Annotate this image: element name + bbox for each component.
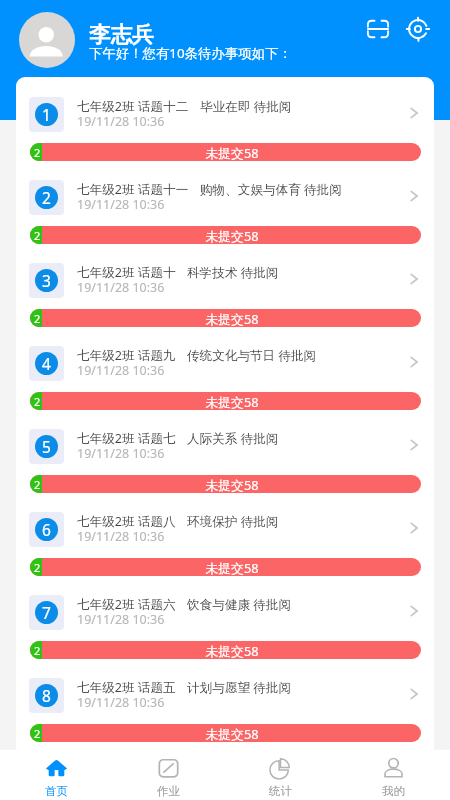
staticText: 七年级2班 话题十 <box>77 264 176 281</box>
staticText: 七年级2班 话题十二 <box>77 98 189 115</box>
button[interactable]: 首页 <box>0 750 112 800</box>
button[interactable]: 5 <box>16 409 434 492</box>
button[interactable]: 8 <box>16 658 434 741</box>
staticText: 未提交58 <box>205 725 259 742</box>
staticText: 19/11/28 10:36 <box>77 528 165 545</box>
staticText: 统计 <box>269 784 292 798</box>
staticText: 19/11/28 10:36 <box>77 196 165 213</box>
staticText: 1 <box>42 104 51 125</box>
button[interactable]: 作业 <box>112 750 224 800</box>
staticText: 2 <box>34 560 41 575</box>
button[interactable]: 2 <box>16 160 434 243</box>
staticText: 环境保护 待批阅 <box>187 513 279 530</box>
staticText: 饮食与健康 待批阅 <box>187 596 292 613</box>
staticText: 4 <box>42 353 51 374</box>
staticText: 未提交58 <box>205 393 259 410</box>
staticText: 19/11/28 10:36 <box>77 113 165 130</box>
staticText: 2 <box>34 145 41 160</box>
staticText: 李志兵 <box>89 21 154 48</box>
staticText: 2 <box>34 311 41 326</box>
button[interactable]: 7 <box>16 575 434 658</box>
staticText: 未提交58 <box>205 144 259 161</box>
staticText: 19/11/28 10:36 <box>77 362 165 379</box>
staticText: 2 <box>34 726 41 741</box>
staticText: 2 <box>34 228 41 243</box>
staticText: 6 <box>42 519 51 540</box>
staticText: 未提交58 <box>205 310 259 327</box>
staticText: 7 <box>42 602 51 623</box>
button[interactable]: 4 <box>16 326 434 409</box>
staticText: 七年级2班 话题九 <box>77 347 176 364</box>
button[interactable]: 1 <box>16 77 434 160</box>
button[interactable]: Locate <box>400 11 436 47</box>
staticText: 未提交58 <box>205 476 259 493</box>
staticText: 首页 <box>45 784 68 798</box>
staticText: 购物、文娱与体育 待批阅 <box>200 181 342 198</box>
staticText: 19/11/28 10:36 <box>77 279 165 296</box>
staticText: 2 <box>42 187 51 208</box>
staticText: 未提交58 <box>205 227 259 244</box>
staticText: 我的 <box>382 784 405 798</box>
staticText: 2 <box>34 394 41 409</box>
staticText: 2 <box>34 477 41 492</box>
staticText: 毕业在即 待批阅 <box>200 98 292 115</box>
staticText: 人际关系 待批阅 <box>187 430 279 447</box>
button[interactable]: Profile avatar <box>19 12 75 68</box>
button[interactable]: 统计 <box>224 750 337 800</box>
staticText: 七年级2班 话题八 <box>77 513 176 530</box>
staticText: 七年级2班 话题五 <box>77 679 176 696</box>
staticText: 19/11/28 10:36 <box>77 694 165 711</box>
staticText: 2 <box>34 643 41 658</box>
staticText: 19/11/28 10:36 <box>77 611 165 628</box>
staticText: 未提交58 <box>205 642 259 659</box>
button[interactable]: 3 <box>16 243 434 326</box>
staticText: 计划与愿望 待批阅 <box>187 679 292 696</box>
button[interactable]: Scan QR code <box>360 11 396 47</box>
staticText: 19/11/28 10:36 <box>77 445 165 462</box>
staticText: 5 <box>42 436 51 457</box>
staticText: 8 <box>42 685 51 706</box>
button[interactable]: 我的 <box>337 750 450 800</box>
staticText: 3 <box>42 270 51 291</box>
staticText: 下午好！您有10条待办事项如下： <box>89 44 292 62</box>
button[interactable]: 6 <box>16 492 434 575</box>
staticText: 未提交58 <box>205 559 259 576</box>
staticText: 七年级2班 话题十一 <box>77 181 189 198</box>
staticText: 传统文化与节日 待批阅 <box>187 347 317 364</box>
staticText: 科学技术 待批阅 <box>187 264 279 281</box>
staticText: 七年级2班 话题六 <box>77 596 176 613</box>
staticText: 七年级2班 话题七 <box>77 430 176 447</box>
staticText: 作业 <box>157 784 180 798</box>
